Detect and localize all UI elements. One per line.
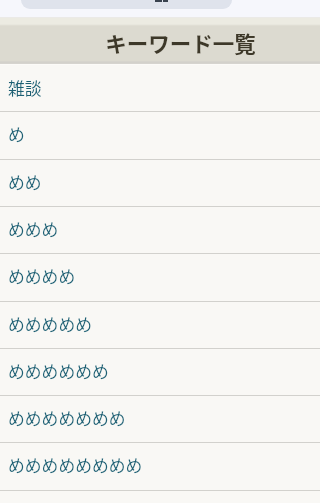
staticText: めめめめ — [8, 264, 76, 288]
button[interactable]: めめめめめめめ — [0, 396, 320, 443]
staticText: めめ — [8, 170, 42, 194]
staticText: キーワード一覧 — [105, 27, 256, 58]
staticText: めめめめめ — [8, 312, 92, 336]
button[interactable]: めめめめ — [0, 254, 320, 302]
staticText: めめめめめめ — [8, 359, 109, 383]
button[interactable]: めめめ — [0, 207, 320, 254]
button[interactable]: めめ — [0, 160, 320, 207]
button[interactable]: めめめめめ — [0, 302, 320, 349]
staticText: め — [8, 122, 25, 146]
staticText: めめめ — [8, 217, 59, 241]
button[interactable]: めめめめめめ — [0, 349, 320, 396]
staticText: 雑談 — [8, 76, 42, 100]
button[interactable]: め — [0, 112, 320, 160]
button[interactable]: キーワード一覧 — [0, 17, 320, 64]
button[interactable]: 雑談 — [0, 65, 320, 112]
button[interactable]: めめめめめめめめ — [0, 443, 320, 491]
staticText: めめめめめめめめ — [8, 453, 143, 477]
staticText: めめめめめめめ — [8, 406, 126, 430]
